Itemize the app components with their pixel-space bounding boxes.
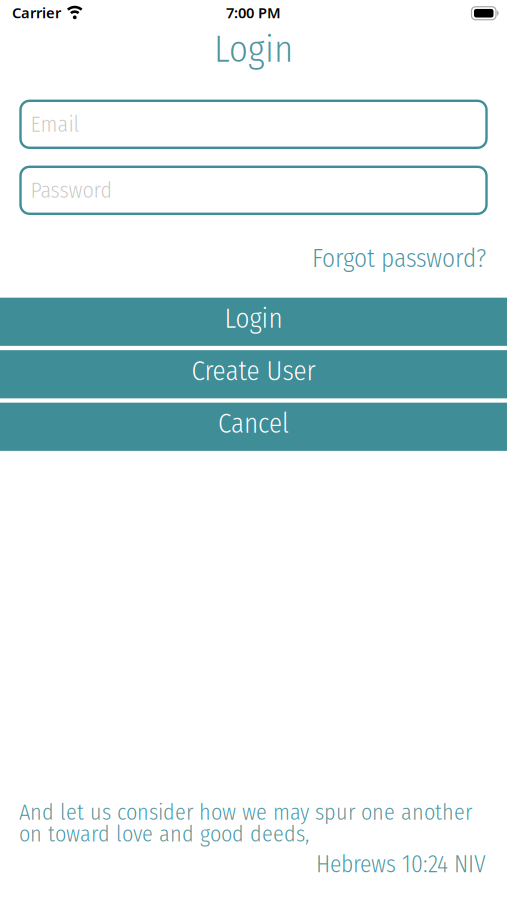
staticText: Email (30, 111, 79, 137)
staticText: Hebrews 10:24 NIV (316, 850, 486, 878)
button[interactable]: Login (0, 298, 507, 346)
staticText: Forgot password? (312, 243, 486, 274)
staticText: Login (224, 303, 282, 335)
staticText: 7:00 PM (226, 3, 281, 22)
staticText: Password (30, 177, 112, 203)
button[interactable]: Email (20, 101, 486, 148)
staticText: And let us consider how we may spur one … (19, 799, 472, 847)
button[interactable]: Create User (0, 350, 507, 398)
button[interactable]: Forgot password? (312, 243, 486, 274)
staticText: Carrier (12, 3, 61, 22)
staticText: Login (214, 27, 293, 71)
staticText: Create User (191, 355, 315, 387)
button[interactable]: Password (20, 167, 486, 214)
button[interactable]: Cancel (0, 403, 507, 451)
staticText: Cancel (218, 408, 289, 440)
